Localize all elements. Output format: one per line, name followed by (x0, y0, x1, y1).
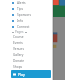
button[interactable]: Events (0, 40, 52, 46)
button[interactable]: Tips (0, 6, 52, 12)
button[interactable]: Course (0, 34, 52, 40)
staticText: Tips (17, 7, 24, 11)
staticText: Info (17, 19, 24, 23)
staticText: Venues (13, 47, 24, 51)
button[interactable]: Play (11, 70, 51, 78)
staticText: Sponsors (17, 13, 31, 17)
button[interactable]: Sponsors (0, 12, 52, 18)
staticText: Shops (13, 65, 23, 69)
button[interactable]: Shops (0, 64, 52, 70)
staticText: Pages (15, 30, 24, 34)
staticText: Events (13, 41, 23, 45)
staticText: Course (13, 35, 24, 39)
button[interactable]: Connect (0, 24, 52, 30)
button[interactable]: Info (0, 18, 52, 24)
button[interactable]: Pages (0, 30, 52, 34)
staticText: Alerts (17, 1, 26, 5)
button[interactable]: Donate (0, 58, 52, 64)
button[interactable]: Gallery (0, 52, 52, 58)
button[interactable]: Alerts (0, 0, 52, 6)
staticText: Play (18, 72, 25, 77)
staticText: Connect (17, 25, 30, 29)
button[interactable]: Venues (0, 46, 52, 52)
staticText: Gallery (13, 53, 24, 57)
staticText: Donate (13, 59, 24, 63)
